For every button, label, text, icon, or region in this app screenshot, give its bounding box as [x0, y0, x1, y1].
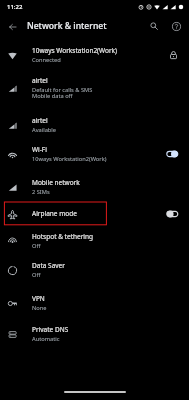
other: Secured network: [169, 50, 178, 59]
button[interactable]: VPN: [0, 289, 189, 317]
staticText: Airplane mode: [32, 209, 77, 218]
staticText: Private DNS: [32, 325, 69, 334]
button[interactable]: Turn on: [165, 209, 178, 219]
staticText: VPN: [32, 294, 45, 303]
staticText: Network & internet: [27, 20, 143, 32]
button[interactable]: Hotspot & tethering: [0, 227, 189, 255]
button[interactable]: Private DNS: [0, 320, 189, 348]
staticText: 10ways Workstation2(Work): [32, 155, 107, 163]
button[interactable]: Search: [143, 15, 165, 37]
button[interactable]: Wi-Fi: [0, 139, 189, 168]
staticText: 2 SIMs: [32, 188, 50, 196]
staticText: Wi-Fi: [32, 145, 47, 154]
button[interactable]: airtel: [0, 111, 189, 139]
staticText: 11:22: [7, 3, 23, 11]
staticText: Data Saver: [32, 261, 65, 270]
staticText: Off: [32, 271, 41, 279]
staticText: 10ways Workstation2(Work): [32, 46, 118, 55]
staticText: Default for calls & SMS Mobile data off: [32, 86, 93, 100]
staticText: Mobile network: [32, 178, 80, 187]
button[interactable]: Airplane mode: [0, 200, 189, 227]
staticText: Connected: [32, 56, 61, 64]
staticText: airtel: [32, 76, 48, 85]
staticText: None: [32, 304, 47, 312]
button[interactable]: Back: [1, 15, 24, 38]
staticText: airtel: [32, 116, 48, 125]
staticText: Automatic: [32, 335, 60, 343]
button[interactable]: Data Saver: [0, 256, 189, 284]
button[interactable]: 10ways Workstation2(Work): [0, 40, 189, 69]
staticText: Off: [32, 242, 41, 250]
button[interactable]: airtel: [0, 71, 189, 104]
staticText: Available: [32, 126, 57, 134]
button[interactable]: Mobile network: [0, 172, 189, 201]
staticText: Hotspot & tethering: [32, 232, 94, 241]
button[interactable]: Turn off: [165, 149, 178, 159]
button[interactable]: Help: [165, 15, 187, 37]
